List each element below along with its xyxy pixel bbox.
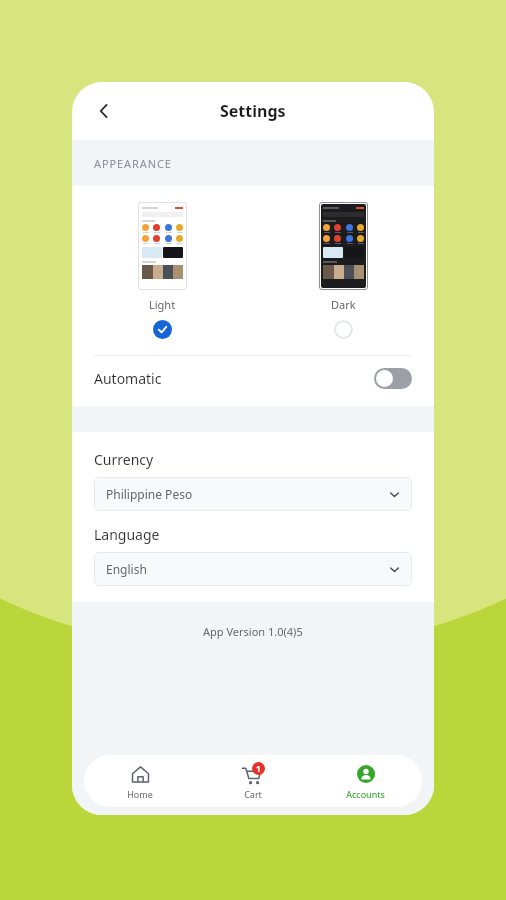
button[interactable]: 1 (196, 755, 309, 807)
staticText: Automatic (94, 369, 162, 388)
staticText: Language (94, 525, 160, 544)
button[interactable]: Accounts (309, 755, 422, 807)
staticText: Dark (331, 297, 356, 312)
button[interactable]: Home (84, 755, 196, 807)
staticText: 1 (256, 763, 261, 774)
staticText: Light (149, 297, 176, 312)
staticText: APPEARANCE (94, 156, 172, 171)
staticText: Philippine Peso (106, 486, 193, 502)
button[interactable]: Back (88, 95, 120, 127)
staticText: Accounts (346, 788, 385, 800)
staticText: Currency (94, 450, 154, 469)
staticText: Cart (244, 788, 262, 800)
button[interactable]: Automatic (72, 356, 434, 400)
staticText: Home (127, 788, 153, 800)
button[interactable]: Philippine Peso (94, 477, 412, 511)
button[interactable]: Dark (253, 202, 434, 339)
staticText: Settings (220, 100, 286, 122)
staticText: App Version 1.0(4)5 (203, 624, 303, 639)
staticText: English (106, 561, 147, 577)
button[interactable]: English (94, 552, 412, 586)
button[interactable]: Light (72, 202, 253, 339)
